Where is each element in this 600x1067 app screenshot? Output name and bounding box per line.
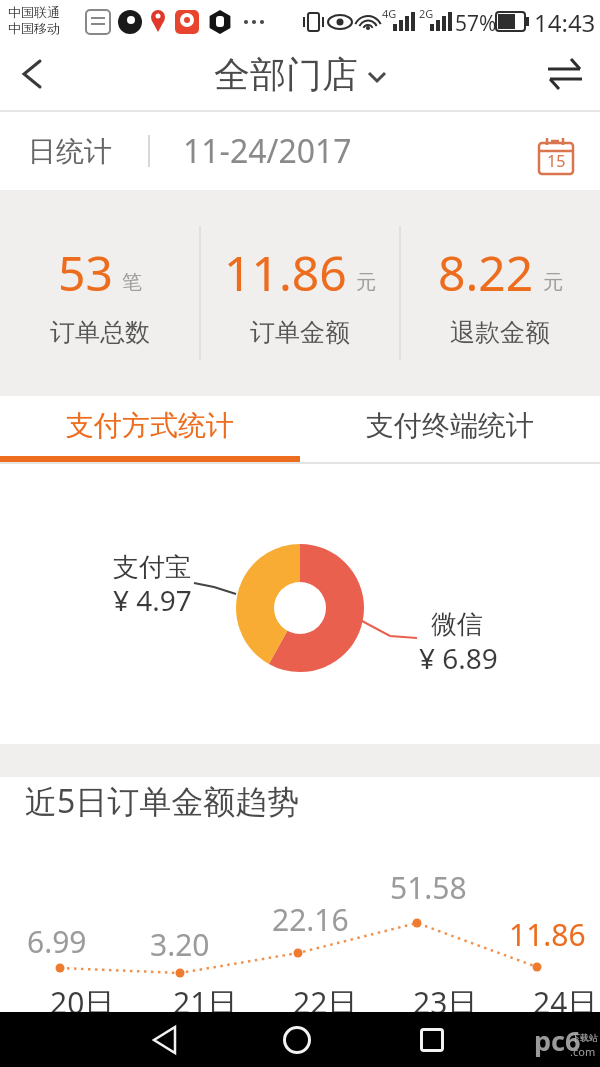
staticText: 6.99 (27, 921, 87, 953)
staticText: 15 (547, 150, 566, 172)
staticText: ¥ 6.89 (419, 639, 498, 671)
staticText: 8.22 (438, 240, 534, 305)
staticText: pc6 (534, 1022, 581, 1059)
staticText: 11.86 (224, 240, 347, 305)
button[interactable] (10, 49, 54, 99)
button[interactable]: 日统计 (28, 112, 574, 190)
button[interactable]: 支付终端统计 (300, 396, 600, 454)
staticText: 57% (455, 9, 497, 38)
staticText: ¥ 4.97 (113, 581, 192, 613)
button[interactable] (135, 1012, 195, 1067)
staticText: 退款金额 (450, 317, 550, 348)
staticText: 2G (419, 6, 434, 21)
staticText: 支付方式统计 (66, 408, 234, 443)
staticText: 53 (58, 240, 113, 305)
staticText: 元 (356, 270, 376, 295)
staticText: 订单总数 (50, 317, 150, 348)
staticText: 订单金额 (250, 317, 350, 348)
staticText: 14:43 (534, 6, 596, 39)
staticText: 全部门店 (214, 52, 358, 97)
staticText: 24日 (533, 982, 598, 1016)
button[interactable]: 支付方式统计 (0, 396, 300, 454)
staticText: 中国移动 (8, 20, 60, 36)
button[interactable]: 全部门店 (214, 52, 386, 97)
staticText: 中国联通 (8, 4, 60, 20)
button[interactable] (540, 46, 590, 102)
staticText: 22.16 (272, 899, 349, 931)
staticText: 近5日订单金额趋势 (25, 779, 300, 823)
staticText: 笔 (122, 270, 142, 295)
button[interactable] (402, 1012, 462, 1067)
staticText: 3.20 (150, 924, 210, 956)
staticText: 22日 (293, 982, 358, 1016)
staticText: 23日 (413, 982, 478, 1016)
staticText: 4G (382, 6, 397, 21)
staticText: 51.58 (390, 867, 467, 899)
staticText: 11-24/2017 (183, 129, 352, 173)
staticText: 11.86 (509, 914, 586, 946)
staticText: .com (570, 1044, 596, 1059)
staticText: 元 (543, 270, 563, 295)
staticText: 20日 (50, 982, 115, 1016)
staticText: 21日 (173, 982, 238, 1016)
staticText: 日统计 (28, 134, 112, 169)
staticText: 支付宝 (113, 551, 191, 583)
button[interactable] (267, 1012, 327, 1067)
staticText: 下载站 (571, 1032, 598, 1043)
staticText: 支付终端统计 (366, 408, 534, 443)
staticText: 微信 (431, 608, 483, 640)
